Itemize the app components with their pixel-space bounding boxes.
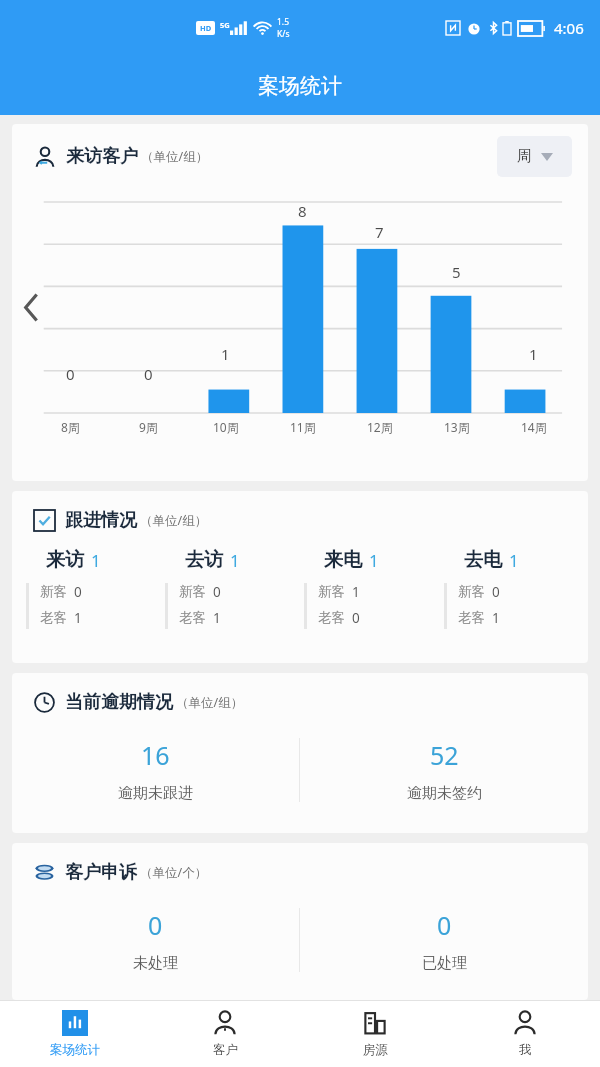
staticText: K/s xyxy=(277,28,290,40)
staticText: 0 xyxy=(74,583,82,601)
staticText: 1 xyxy=(352,583,360,601)
staticText: 1 xyxy=(74,609,82,627)
staticText: 5 xyxy=(452,262,461,282)
staticText: 0 xyxy=(352,609,360,627)
staticText: 老客 xyxy=(318,609,345,626)
staticText: 1 xyxy=(221,344,230,364)
staticText: 案场统计 xyxy=(50,1042,100,1058)
staticText: 5G xyxy=(220,20,230,30)
button[interactable]: 0 xyxy=(300,908,588,988)
staticText: 新客 xyxy=(40,583,67,600)
button[interactable]: 客户 xyxy=(150,1001,300,1067)
staticText: 8 xyxy=(298,201,307,221)
staticText: 0 xyxy=(492,583,500,601)
staticText: 来访 xyxy=(46,548,84,572)
staticText: 老客 xyxy=(458,609,485,626)
staticText: 客户申诉 xyxy=(65,861,137,884)
staticText: （单位/个） xyxy=(140,864,208,881)
staticText: 未处理 xyxy=(133,954,178,973)
staticText: 0 xyxy=(437,908,452,942)
staticText: 16 xyxy=(141,738,170,772)
staticText: 房源 xyxy=(363,1042,388,1058)
staticText: 老客 xyxy=(179,609,206,626)
staticText: 11周 xyxy=(290,419,316,435)
staticText: 1 xyxy=(492,609,500,627)
staticText: 跟进情况 xyxy=(65,509,137,532)
button[interactable]: 52 xyxy=(300,738,588,818)
staticText: 1 xyxy=(369,549,379,572)
button[interactable]: 16 xyxy=(12,738,299,818)
button[interactable]: 0 xyxy=(12,908,299,988)
staticText: 13周 xyxy=(444,419,470,435)
staticText: 4:06 xyxy=(554,18,584,38)
staticText: 来访客户 xyxy=(66,145,138,168)
staticText: 当前逾期情况 xyxy=(65,691,173,714)
staticText: 14周 xyxy=(521,419,547,435)
staticText: 7 xyxy=(375,222,384,242)
staticText: 12周 xyxy=(367,419,393,435)
staticText: 新客 xyxy=(179,583,206,600)
staticText: （单位/组） xyxy=(141,148,209,165)
staticText: 1 xyxy=(509,549,519,572)
button[interactable]: 来访 xyxy=(26,548,165,629)
staticText: 新客 xyxy=(458,583,485,600)
staticText: 我 xyxy=(519,1042,532,1058)
button[interactable]: 我 xyxy=(450,1001,600,1067)
staticText: 8周 xyxy=(61,419,80,435)
staticText: （单位/组） xyxy=(176,694,244,711)
staticText: 1.5 xyxy=(277,16,290,28)
staticText: 52 xyxy=(430,738,459,772)
staticText: 0 xyxy=(148,908,163,942)
staticText: 0 xyxy=(213,583,221,601)
staticText: 1 xyxy=(213,609,221,627)
staticText: 9周 xyxy=(139,419,158,435)
button[interactable]: 来电 xyxy=(304,548,444,629)
staticText: 逾期未跟进 xyxy=(118,784,193,803)
staticText: （单位/组） xyxy=(140,512,208,529)
staticText: 0 xyxy=(66,364,75,384)
staticText: 0 xyxy=(144,364,153,384)
staticText: 逾期未签约 xyxy=(407,784,482,803)
button[interactable]: 案场统计 xyxy=(0,1001,150,1067)
staticText: 去电 xyxy=(464,548,502,572)
staticText: HD xyxy=(200,23,212,33)
staticText: 新客 xyxy=(318,583,345,600)
staticText: 周 xyxy=(517,147,532,166)
staticText: 10周 xyxy=(213,419,239,435)
staticText: 1 xyxy=(91,549,101,572)
staticText: 已处理 xyxy=(422,954,467,973)
staticText: 去访 xyxy=(185,548,223,572)
button[interactable]: 去电 xyxy=(444,548,584,629)
button[interactable]: 周 xyxy=(497,136,572,177)
staticText: 1 xyxy=(230,549,240,572)
staticText: 案场统计 xyxy=(258,73,342,99)
staticText: 客户 xyxy=(213,1042,238,1058)
staticText: 老客 xyxy=(40,609,67,626)
button[interactable]: 去访 xyxy=(165,548,304,629)
button[interactable]: 房源 xyxy=(300,1001,450,1067)
staticText: 来电 xyxy=(324,548,362,572)
staticText: 1 xyxy=(529,344,538,364)
